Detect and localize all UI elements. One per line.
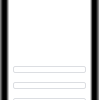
button[interactable]: Email address [13,66,86,73]
button[interactable]: Password [13,82,86,89]
button[interactable]: Sign in [13,98,86,100]
